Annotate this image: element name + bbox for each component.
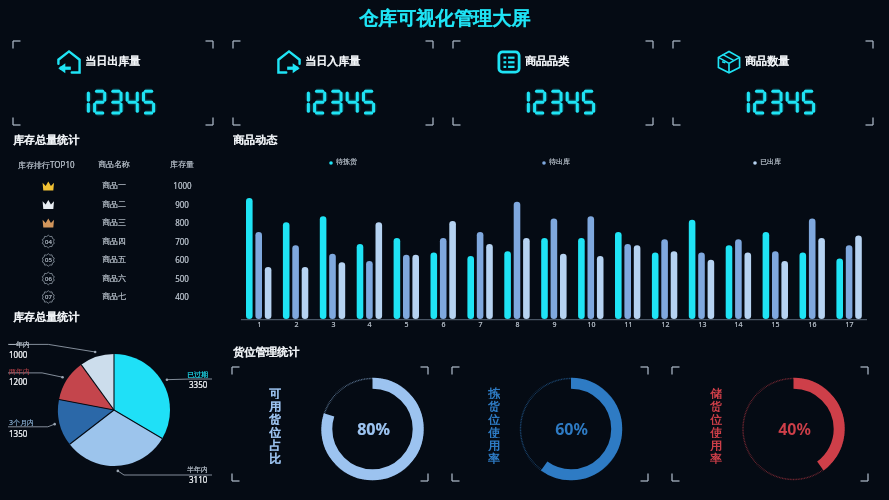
staticText: 13 [698, 320, 707, 330]
staticText: 10 [587, 320, 596, 330]
staticText: 3 [331, 320, 336, 330]
button[interactable]: 已出库 [760, 157, 781, 166]
staticText: 1000 [173, 180, 192, 191]
staticText: 80% [357, 418, 390, 440]
button[interactable]: 商品动态 [233, 133, 277, 147]
staticText: 9 [552, 320, 557, 330]
staticText: 12 [661, 320, 670, 330]
button[interactable] [496, 49, 596, 75]
staticText: 商品五 [102, 254, 126, 264]
staticText: 库存总量统计 [13, 133, 79, 147]
staticText: 07 [45, 293, 52, 301]
staticText: 用 [488, 438, 500, 451]
staticText: 商品七 [102, 291, 126, 301]
staticText: 货 [710, 399, 722, 412]
staticText: 位 [269, 425, 281, 438]
staticText: 库存排行TOP10 [18, 159, 75, 170]
staticText: 两年内 [9, 367, 30, 376]
staticText: 商品六 [102, 273, 126, 283]
staticText: 商品四 [102, 236, 126, 246]
button[interactable]: 库存总量统计 [13, 133, 79, 147]
staticText: 用 [269, 399, 281, 412]
button[interactable] [10, 214, 210, 232]
staticText: 6 [441, 320, 446, 330]
staticText: 900 [175, 199, 189, 210]
button[interactable] [10, 288, 210, 306]
button[interactable]: 货位管理统计 [233, 345, 299, 359]
staticText: 3个月内 [9, 418, 35, 428]
staticText: 500 [175, 273, 189, 284]
staticText: 15 [771, 320, 780, 330]
staticText: 60% [555, 418, 588, 440]
button[interactable] [10, 177, 210, 195]
staticText: 商品品类 [525, 54, 569, 68]
button[interactable]: 库存总量统计 [13, 310, 79, 324]
button[interactable] [56, 49, 156, 75]
staticText: 当日出库量 [85, 54, 140, 68]
staticText: 位 [710, 412, 722, 425]
staticText: 700 [175, 236, 189, 247]
button[interactable]: 待出库 [549, 157, 570, 166]
staticText: 1000 [9, 349, 28, 360]
staticText: 货 [269, 412, 281, 425]
button[interactable]: 拣 [486, 386, 502, 464]
button[interactable] [10, 270, 210, 288]
button[interactable]: 待拣货 [336, 157, 357, 166]
staticText: 商品三 [102, 217, 126, 227]
staticText: 率 [488, 451, 500, 464]
staticText: 600 [175, 254, 189, 265]
staticText: 7 [478, 320, 483, 330]
staticText: 用 [710, 438, 722, 451]
staticText: 商品二 [102, 199, 126, 209]
staticText: 2 [294, 320, 299, 330]
staticText: 半年内 [187, 465, 208, 474]
staticText: 储 [710, 386, 722, 399]
staticText: 04 [45, 238, 52, 246]
staticText: 比 [269, 451, 281, 464]
staticText: 货 [488, 399, 500, 412]
staticText: 1200 [9, 376, 28, 387]
staticText: 05 [45, 256, 52, 264]
staticText: 当日入库量 [305, 54, 360, 68]
staticText: 拣 [488, 386, 500, 399]
staticText: 位 [488, 412, 500, 425]
staticText: 已过期 [187, 370, 208, 379]
button[interactable]: 可 [267, 386, 283, 464]
button[interactable] [276, 49, 376, 75]
staticText: 800 [175, 217, 189, 228]
staticText: 库存量 [170, 159, 194, 169]
button[interactable]: 储 [708, 386, 724, 464]
button[interactable] [10, 233, 210, 251]
staticText: 14 [734, 320, 743, 330]
staticText: 11 [624, 320, 633, 330]
staticText: 3110 [189, 474, 208, 485]
staticText: 16 [808, 320, 817, 330]
staticText: 400 [175, 291, 189, 302]
staticText: 40% [778, 418, 811, 440]
staticText: 一年内 [9, 340, 30, 349]
staticText: 已出库 [760, 157, 781, 166]
staticText: 待拣货 [336, 157, 357, 166]
staticText: 商品名称 [98, 159, 130, 169]
staticText: 库存总量统计 [13, 310, 79, 324]
staticText: 商品数量 [745, 54, 789, 68]
staticText: 使 [488, 425, 500, 438]
staticText: 1350 [9, 428, 28, 439]
button[interactable] [10, 196, 210, 214]
staticText: 17 [845, 320, 854, 330]
staticText: 商品一 [102, 180, 126, 190]
staticText: 货位管理统计 [233, 345, 299, 359]
staticText: 06 [45, 275, 52, 283]
staticText: 1 [257, 320, 262, 330]
staticText: 商品动态 [233, 133, 277, 147]
staticText: 可 [269, 386, 281, 399]
staticText: 3350 [189, 379, 208, 390]
staticText: 待出库 [549, 157, 570, 166]
staticText: 使 [710, 425, 722, 438]
button[interactable] [10, 251, 210, 269]
button[interactable] [716, 49, 816, 75]
staticText: 5 [404, 320, 409, 330]
staticText: 仓库可视化管理大屏 [359, 7, 530, 31]
staticText: 4 [367, 320, 372, 330]
staticText: 8 [515, 320, 520, 330]
